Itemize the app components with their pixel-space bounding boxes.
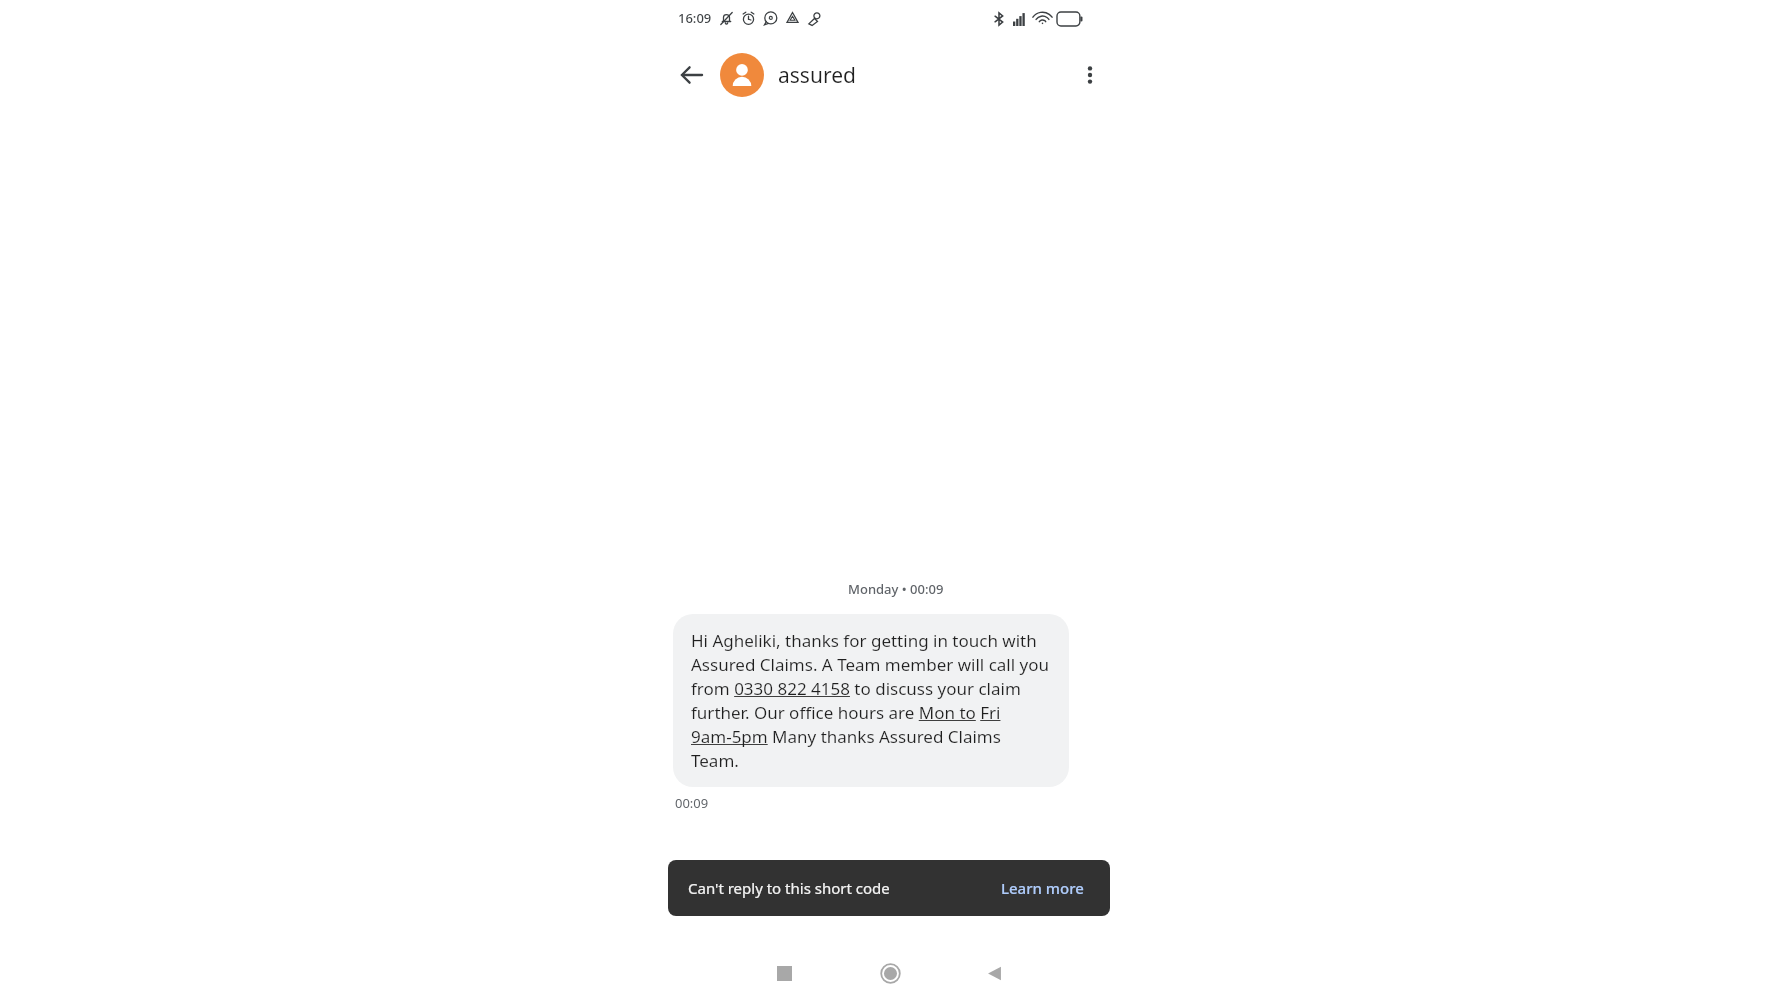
- staticText: Hi Agheliki, thanks for getting in touch…: [691, 629, 1051, 772]
- button[interactable]: More options: [1066, 51, 1114, 99]
- button[interactable]: Hi Agheliki, thanks for getting in touch…: [673, 614, 1069, 787]
- staticText: assured: [778, 61, 856, 90]
- staticText: Learn more: [1001, 878, 1084, 898]
- button[interactable]: Back: [970, 949, 1018, 997]
- button[interactable]: Recent apps: [760, 949, 808, 997]
- staticText: 00:09: [675, 794, 709, 812]
- button[interactable]: Learn more: [995, 872, 1090, 904]
- staticText: 16:09: [678, 9, 712, 27]
- button[interactable]: assured: [712, 49, 864, 101]
- button[interactable]: Home: [866, 949, 914, 997]
- staticText: Monday • 00:09: [848, 580, 944, 598]
- staticText: Can't reply to this short code: [688, 878, 890, 898]
- button[interactable]: Back: [668, 51, 716, 99]
